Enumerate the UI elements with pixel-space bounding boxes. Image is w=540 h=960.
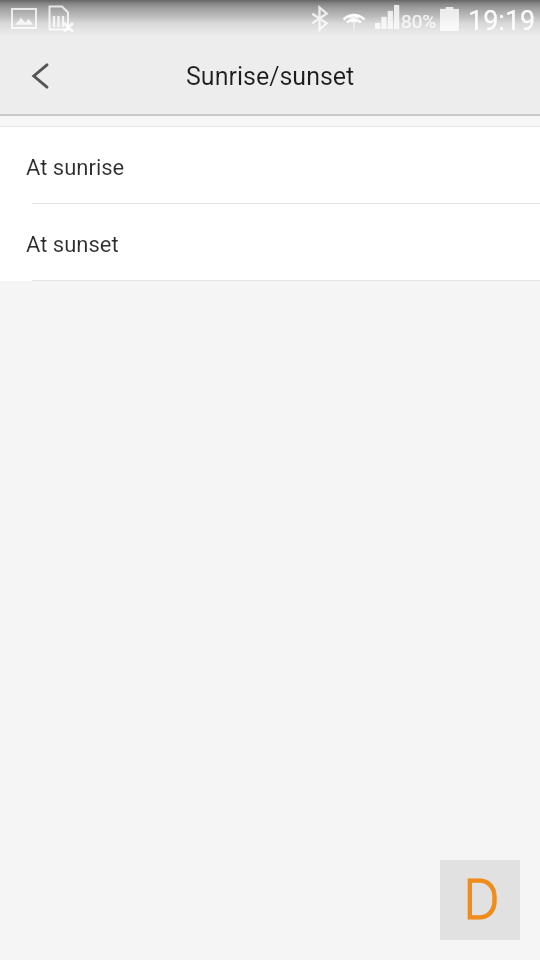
staticText: 19:19 (468, 5, 536, 37)
button[interactable]: Debug overlay (440, 860, 520, 940)
staticText: D (464, 869, 499, 931)
button[interactable]: At sunset (0, 204, 540, 281)
button[interactable]: Back (15, 50, 67, 102)
staticText: At sunset (26, 232, 119, 258)
staticText: 80% (401, 10, 437, 32)
staticText: Sunrise/sunset (186, 62, 355, 91)
staticText: At sunrise (26, 155, 125, 181)
button[interactable]: At sunrise (0, 127, 540, 204)
